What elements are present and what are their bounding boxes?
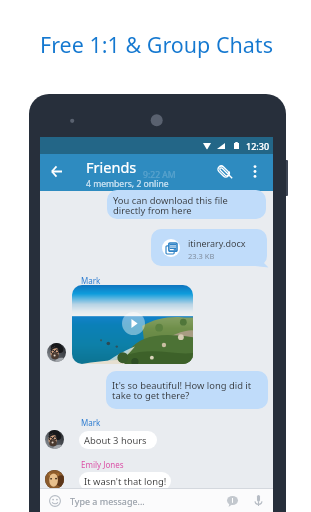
- staticText: It wasn't that long!: [84, 475, 167, 488]
- staticText: Free 1:1 & Group Chats: [40, 30, 273, 59]
- staticText: You can download this file directly from…: [113, 194, 228, 217]
- button[interactable]: About 3 hours: [79, 431, 157, 449]
- button[interactable]: Attach file: [209, 153, 237, 190]
- staticText: 12:30: [246, 140, 270, 152]
- staticText: Emily Jones: [81, 459, 124, 470]
- staticText: About 3 hours: [84, 434, 147, 447]
- button[interactable]: You can download this file directly from…: [107, 190, 266, 219]
- button[interactable]: It's so beautiful! How long did it take …: [106, 371, 268, 409]
- staticText: itinerary.docx: [188, 237, 246, 249]
- staticText: Mark: [81, 417, 101, 428]
- button[interactable]: More options: [242, 153, 268, 190]
- staticText: 9:22 AM: [143, 169, 176, 181]
- button[interactable]: Stickers: [219, 489, 245, 512]
- button[interactable]: Emoji: [40, 489, 70, 512]
- button[interactable]: Back: [40, 153, 72, 190]
- staticText: 4 members, 2 online: [86, 178, 169, 190]
- staticText: Mark: [81, 275, 101, 286]
- staticText: 23.3 KB: [188, 251, 215, 261]
- button[interactable]: It wasn't that long!: [79, 472, 171, 490]
- staticText: Friends: [86, 157, 137, 177]
- button[interactable]: Voice message: [245, 489, 271, 512]
- button[interactable]: Play video: [72, 285, 193, 364]
- staticText: Type a message...: [70, 495, 145, 507]
- staticText: It's so beautiful! How long did it take …: [112, 379, 252, 402]
